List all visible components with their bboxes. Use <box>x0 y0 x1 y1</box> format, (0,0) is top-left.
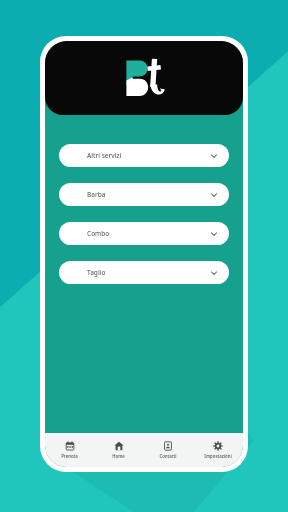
staticText: Home <box>112 453 125 459</box>
staticText: Prenota <box>61 453 78 459</box>
button[interactable]: Altri servizi <box>59 144 229 167</box>
button[interactable]: Home <box>94 433 143 467</box>
other: Contatti <box>163 441 173 451</box>
button[interactable]: Taglio <box>59 261 229 284</box>
other: Home <box>114 441 124 451</box>
other: Impostazioni <box>213 441 223 451</box>
staticText: Combo <box>87 229 110 238</box>
button[interactable]: Impostazioni <box>193 433 243 467</box>
staticText: Taglio <box>87 268 106 277</box>
button[interactable]: Combo <box>59 222 229 245</box>
button[interactable]: Barba <box>59 183 229 206</box>
button[interactable]: Prenota <box>45 433 94 467</box>
staticText: Altri servizi <box>87 151 122 160</box>
staticText: Contatti <box>159 453 177 459</box>
staticText: Impostazioni <box>204 453 232 459</box>
other: Prenota <box>65 441 75 451</box>
button[interactable]: Contatti <box>143 433 193 467</box>
staticText: Barba <box>87 190 106 199</box>
